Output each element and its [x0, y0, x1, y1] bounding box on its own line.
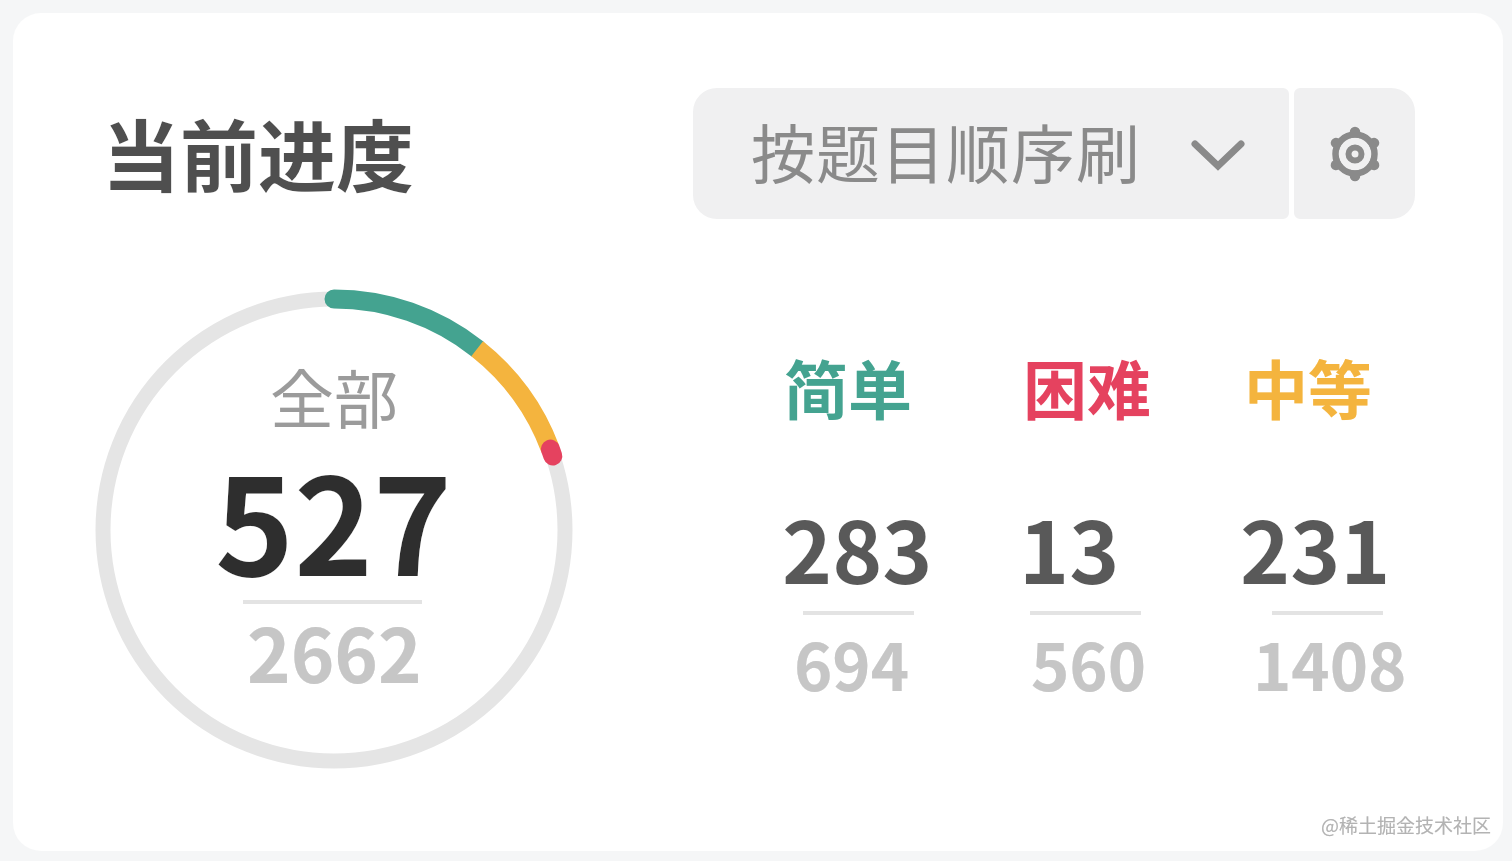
staticText: 2662 — [247, 597, 422, 704]
staticText: 当前进度 — [102, 96, 415, 209]
staticText: 283 — [782, 485, 933, 608]
staticText: 694 — [794, 616, 910, 710]
staticText: 527 — [215, 421, 453, 615]
staticText: 560 — [1031, 616, 1147, 710]
staticText: 简单 — [784, 340, 912, 433]
button[interactable]: 按题目顺序刷 — [693, 88, 1289, 219]
staticText: @稀土掘金技术社区 — [1321, 811, 1491, 839]
staticText: 困难 — [1023, 340, 1151, 433]
staticText: 全部 — [270, 349, 398, 442]
staticText: 1408 — [1253, 616, 1407, 710]
button[interactable] — [1294, 88, 1415, 219]
staticText: 按题目顺序刷 — [751, 104, 1141, 197]
staticText: 231 — [1240, 485, 1391, 608]
staticText: 中等 — [1244, 340, 1372, 433]
staticText: 13 — [1019, 485, 1120, 608]
